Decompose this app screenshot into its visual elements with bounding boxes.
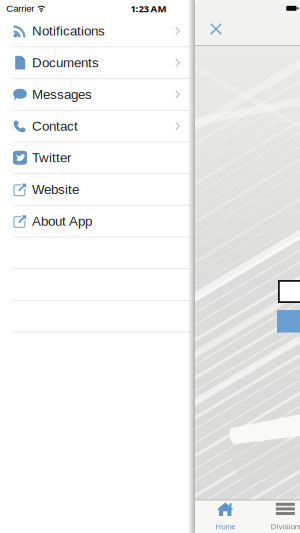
- staticText: Twitter: [32, 150, 71, 165]
- button[interactable]: Contact: [0, 110, 190, 142]
- staticText: Contact: [32, 119, 78, 133]
- staticText: 1:23 AM: [130, 2, 166, 15]
- button[interactable]: Notifications: [0, 15, 190, 47]
- button[interactable]: Divisions: [262, 500, 300, 533]
- button[interactable]: Documents: [0, 47, 190, 78]
- button[interactable]: Home: [201, 500, 249, 533]
- button[interactable]: Website: [0, 174, 190, 205]
- staticText: Documents: [32, 55, 99, 70]
- staticText: Divisions: [271, 522, 300, 531]
- staticText: Home: [215, 522, 235, 531]
- staticText: Messages: [32, 87, 92, 102]
- staticText: Website: [32, 182, 79, 197]
- staticText: About App: [32, 214, 92, 229]
- button[interactable]: Messages: [0, 78, 190, 110]
- button[interactable]: Twitter: [0, 142, 190, 174]
- button[interactable]: About App: [0, 205, 190, 237]
- staticText: Notifications: [32, 23, 105, 38]
- staticText: Carrier: [6, 3, 34, 14]
- button[interactable]: Close menu: [205, 18, 227, 40]
